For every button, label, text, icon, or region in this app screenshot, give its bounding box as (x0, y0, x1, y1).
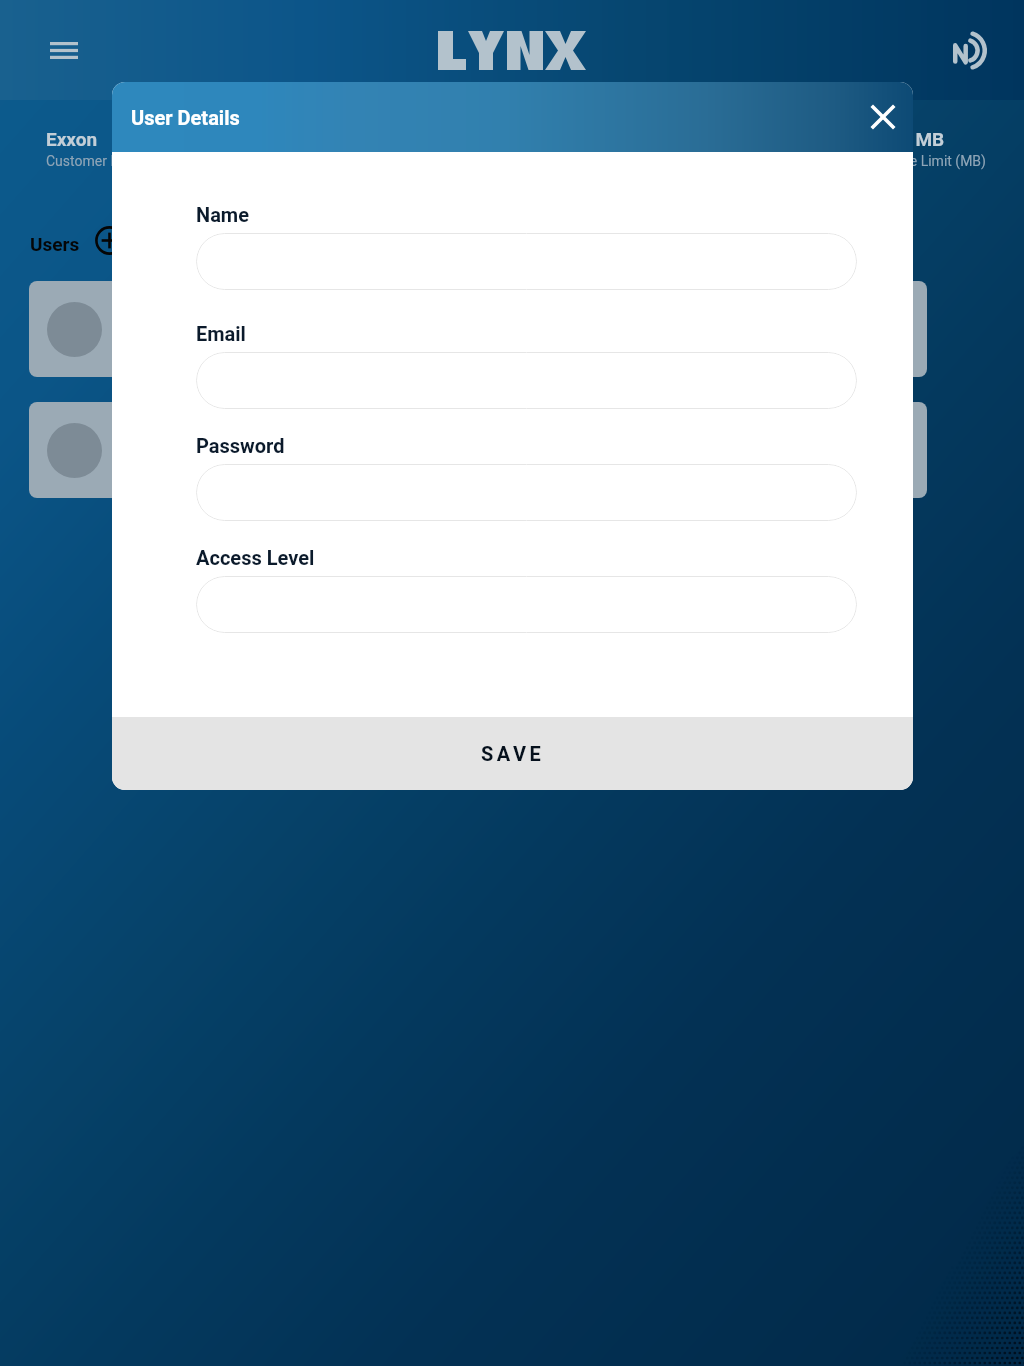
staticText: Password (196, 434, 285, 457)
button[interactable] (29, 281, 927, 377)
staticText: User Details (131, 106, 240, 129)
button[interactable]: Add user (93, 224, 125, 256)
staticText: Customer Name (46, 153, 148, 169)
button[interactable]: Menu (38, 24, 90, 76)
button[interactable] (29, 402, 927, 498)
staticText: Users (30, 233, 80, 255)
button[interactable] (196, 464, 857, 521)
button[interactable] (196, 233, 857, 290)
staticText: Access Level (196, 546, 315, 569)
staticText: 500 MB (878, 128, 945, 150)
staticText: Email (196, 322, 246, 345)
staticText: Exxon (46, 128, 98, 150)
button[interactable] (196, 576, 857, 633)
button[interactable] (196, 352, 857, 409)
button[interactable]: Close (861, 95, 905, 139)
staticText: SAVE (481, 742, 545, 765)
button[interactable]: SAVE (112, 717, 913, 790)
staticText: Name (196, 203, 249, 226)
staticText: Usage Limit (MB) (878, 153, 986, 169)
button[interactable]: NFC (944, 24, 996, 76)
